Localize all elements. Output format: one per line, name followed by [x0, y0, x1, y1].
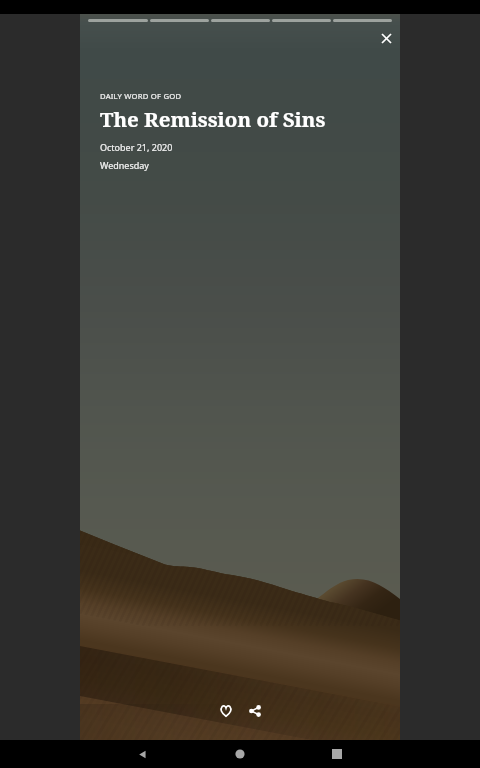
staticText: The Remission of Sins	[100, 105, 326, 133]
button[interactable]: Recent apps	[288, 740, 385, 768]
staticText: DAILY WORD OF GOD	[100, 91, 182, 101]
button[interactable]: Close	[374, 26, 398, 50]
staticText: Wednesday	[100, 159, 149, 171]
button[interactable]: Share	[242, 698, 268, 724]
button[interactable]: Like	[213, 698, 239, 724]
staticText: October 21, 2020	[100, 141, 173, 153]
button[interactable]: Back	[94, 740, 191, 768]
button[interactable]: Home	[191, 740, 288, 768]
